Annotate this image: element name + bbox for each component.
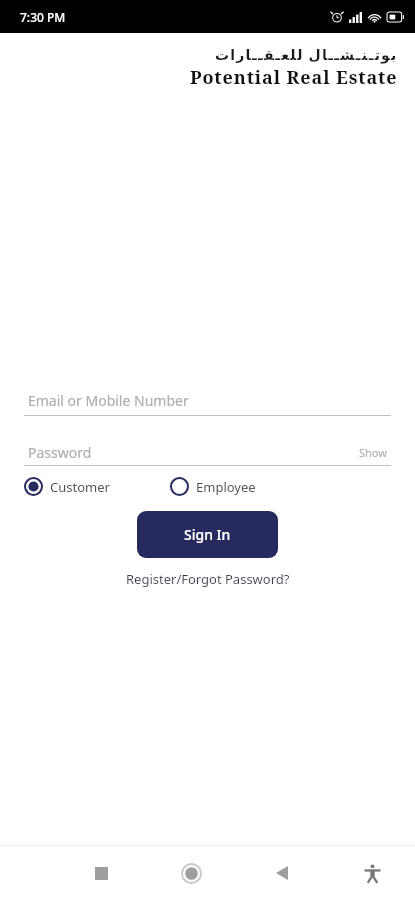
staticText: Show: [359, 445, 387, 460]
staticText: Email or Mobile Number: [28, 391, 189, 410]
staticText: Employee: [196, 478, 256, 496]
button[interactable]: Home: [168, 850, 214, 896]
button[interactable]: Register/Forgot Password?: [120, 564, 296, 594]
button[interactable]: Employee: [170, 477, 258, 496]
staticText: Register/Forgot Password?: [126, 570, 290, 588]
staticText: Sign In: [184, 525, 231, 544]
staticText: بوتـنـشــال للعـقــارات: [215, 45, 398, 64]
button[interactable]: Accessibility: [349, 850, 395, 896]
button[interactable]: Back: [259, 850, 305, 896]
button[interactable]: Show: [355, 442, 391, 463]
button[interactable]: Password: [28, 443, 92, 462]
staticText: Customer: [50, 478, 110, 496]
button[interactable]: Recent apps: [78, 850, 124, 896]
button[interactable]: Customer: [24, 477, 112, 496]
staticText: 7:30 PM: [20, 9, 66, 25]
button[interactable]: Sign In: [137, 511, 278, 558]
staticText: Potential Real Estate: [190, 65, 398, 90]
button[interactable]: Email or Mobile Number: [24, 385, 391, 415]
